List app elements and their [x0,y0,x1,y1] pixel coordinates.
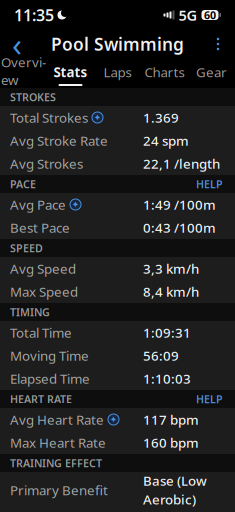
staticText: 1:10:03 [143,370,191,387]
button[interactable]: Stats [47,58,94,86]
button[interactable]: Avg Heart Rate [0,408,235,431]
staticText: ✦ [71,199,79,210]
staticText: 1.369 [143,109,179,126]
button[interactable]: Total Strokes [0,106,235,129]
button[interactable]: Avg Pace [0,193,235,216]
button[interactable]: Max Speed [0,280,235,303]
staticText: Moving Time [10,347,89,364]
button[interactable]: Avg Speed [0,257,235,280]
staticText: 117 bpm [143,411,199,428]
staticText: 8,4 km/h [143,283,199,300]
button[interactable]: Max Heart Rate [0,431,235,454]
staticText: 11:35 [14,4,54,26]
staticText: Base (Low [143,472,207,489]
staticText: 60 [204,8,216,22]
staticText: HELP [196,392,223,406]
staticText: SPEED [10,241,43,255]
staticText: HELP [196,177,223,191]
staticText: Avg Heart Rate [10,411,104,428]
staticText: ✦ [109,414,117,425]
staticText: HEART RATE [10,392,72,406]
staticText: Gear [196,63,227,81]
staticText: 5G [178,5,197,25]
staticText: Max Speed [10,283,78,300]
button[interactable]: HELP [194,174,225,194]
button[interactable]: Laps [94,58,141,86]
staticText: Total Strokes [10,109,88,126]
staticText: STROKES [10,90,56,104]
button[interactable]: More options [201,30,235,58]
staticText: TRAINING EFFECT [10,456,102,470]
button[interactable]: Elapsed Time [0,367,235,390]
button[interactable]: Total Time [0,321,235,344]
staticText: Overview [1,53,46,89]
staticText: Avg Strokes [10,155,83,172]
button[interactable]: Back [0,30,34,58]
staticText: Avg Speed [10,260,76,277]
staticText: Total Time [10,324,72,341]
staticText: Laps [103,63,131,81]
staticText: 56:09 [143,347,179,364]
button[interactable]: Primary Benefit [0,472,235,508]
staticText: 1:49 /100m [143,196,216,213]
staticText: Elapsed Time [10,370,90,387]
staticText: Best Pace [10,219,70,236]
button[interactable]: Charts [141,58,188,86]
button[interactable]: Moving Time [0,344,235,367]
staticText: Charts [144,63,184,81]
staticText: Max Heart Rate [10,434,106,451]
staticText: 22,1 /length [143,155,220,172]
staticText: TIMING [10,305,50,319]
staticText: PACE [10,177,36,191]
staticText: 0:43 /100m [143,219,216,236]
button[interactable]: HELP [194,389,225,409]
staticText: Aerobic) [143,490,196,508]
staticText: Avg Stroke Rate [10,132,108,149]
staticText: 160 bpm [143,434,199,451]
button[interactable]: Gear [188,58,235,86]
staticText: 3,3 km/h [143,260,199,277]
staticText: Avg Pace [10,196,66,213]
button[interactable]: Avg Strokes [0,152,235,175]
button[interactable]: Best Pace [0,216,235,239]
staticText: Pool Swimming [51,32,184,55]
staticText: ‹ [12,23,22,65]
staticText: 1:09:31 [143,324,191,341]
button[interactable]: Avg Stroke Rate [0,129,235,152]
staticText: ✦ [93,112,101,123]
staticText: Stats [53,63,87,81]
staticText: Primary Benefit [10,481,108,499]
button[interactable]: Overview [0,58,47,86]
staticText: 24 spm [143,132,189,149]
